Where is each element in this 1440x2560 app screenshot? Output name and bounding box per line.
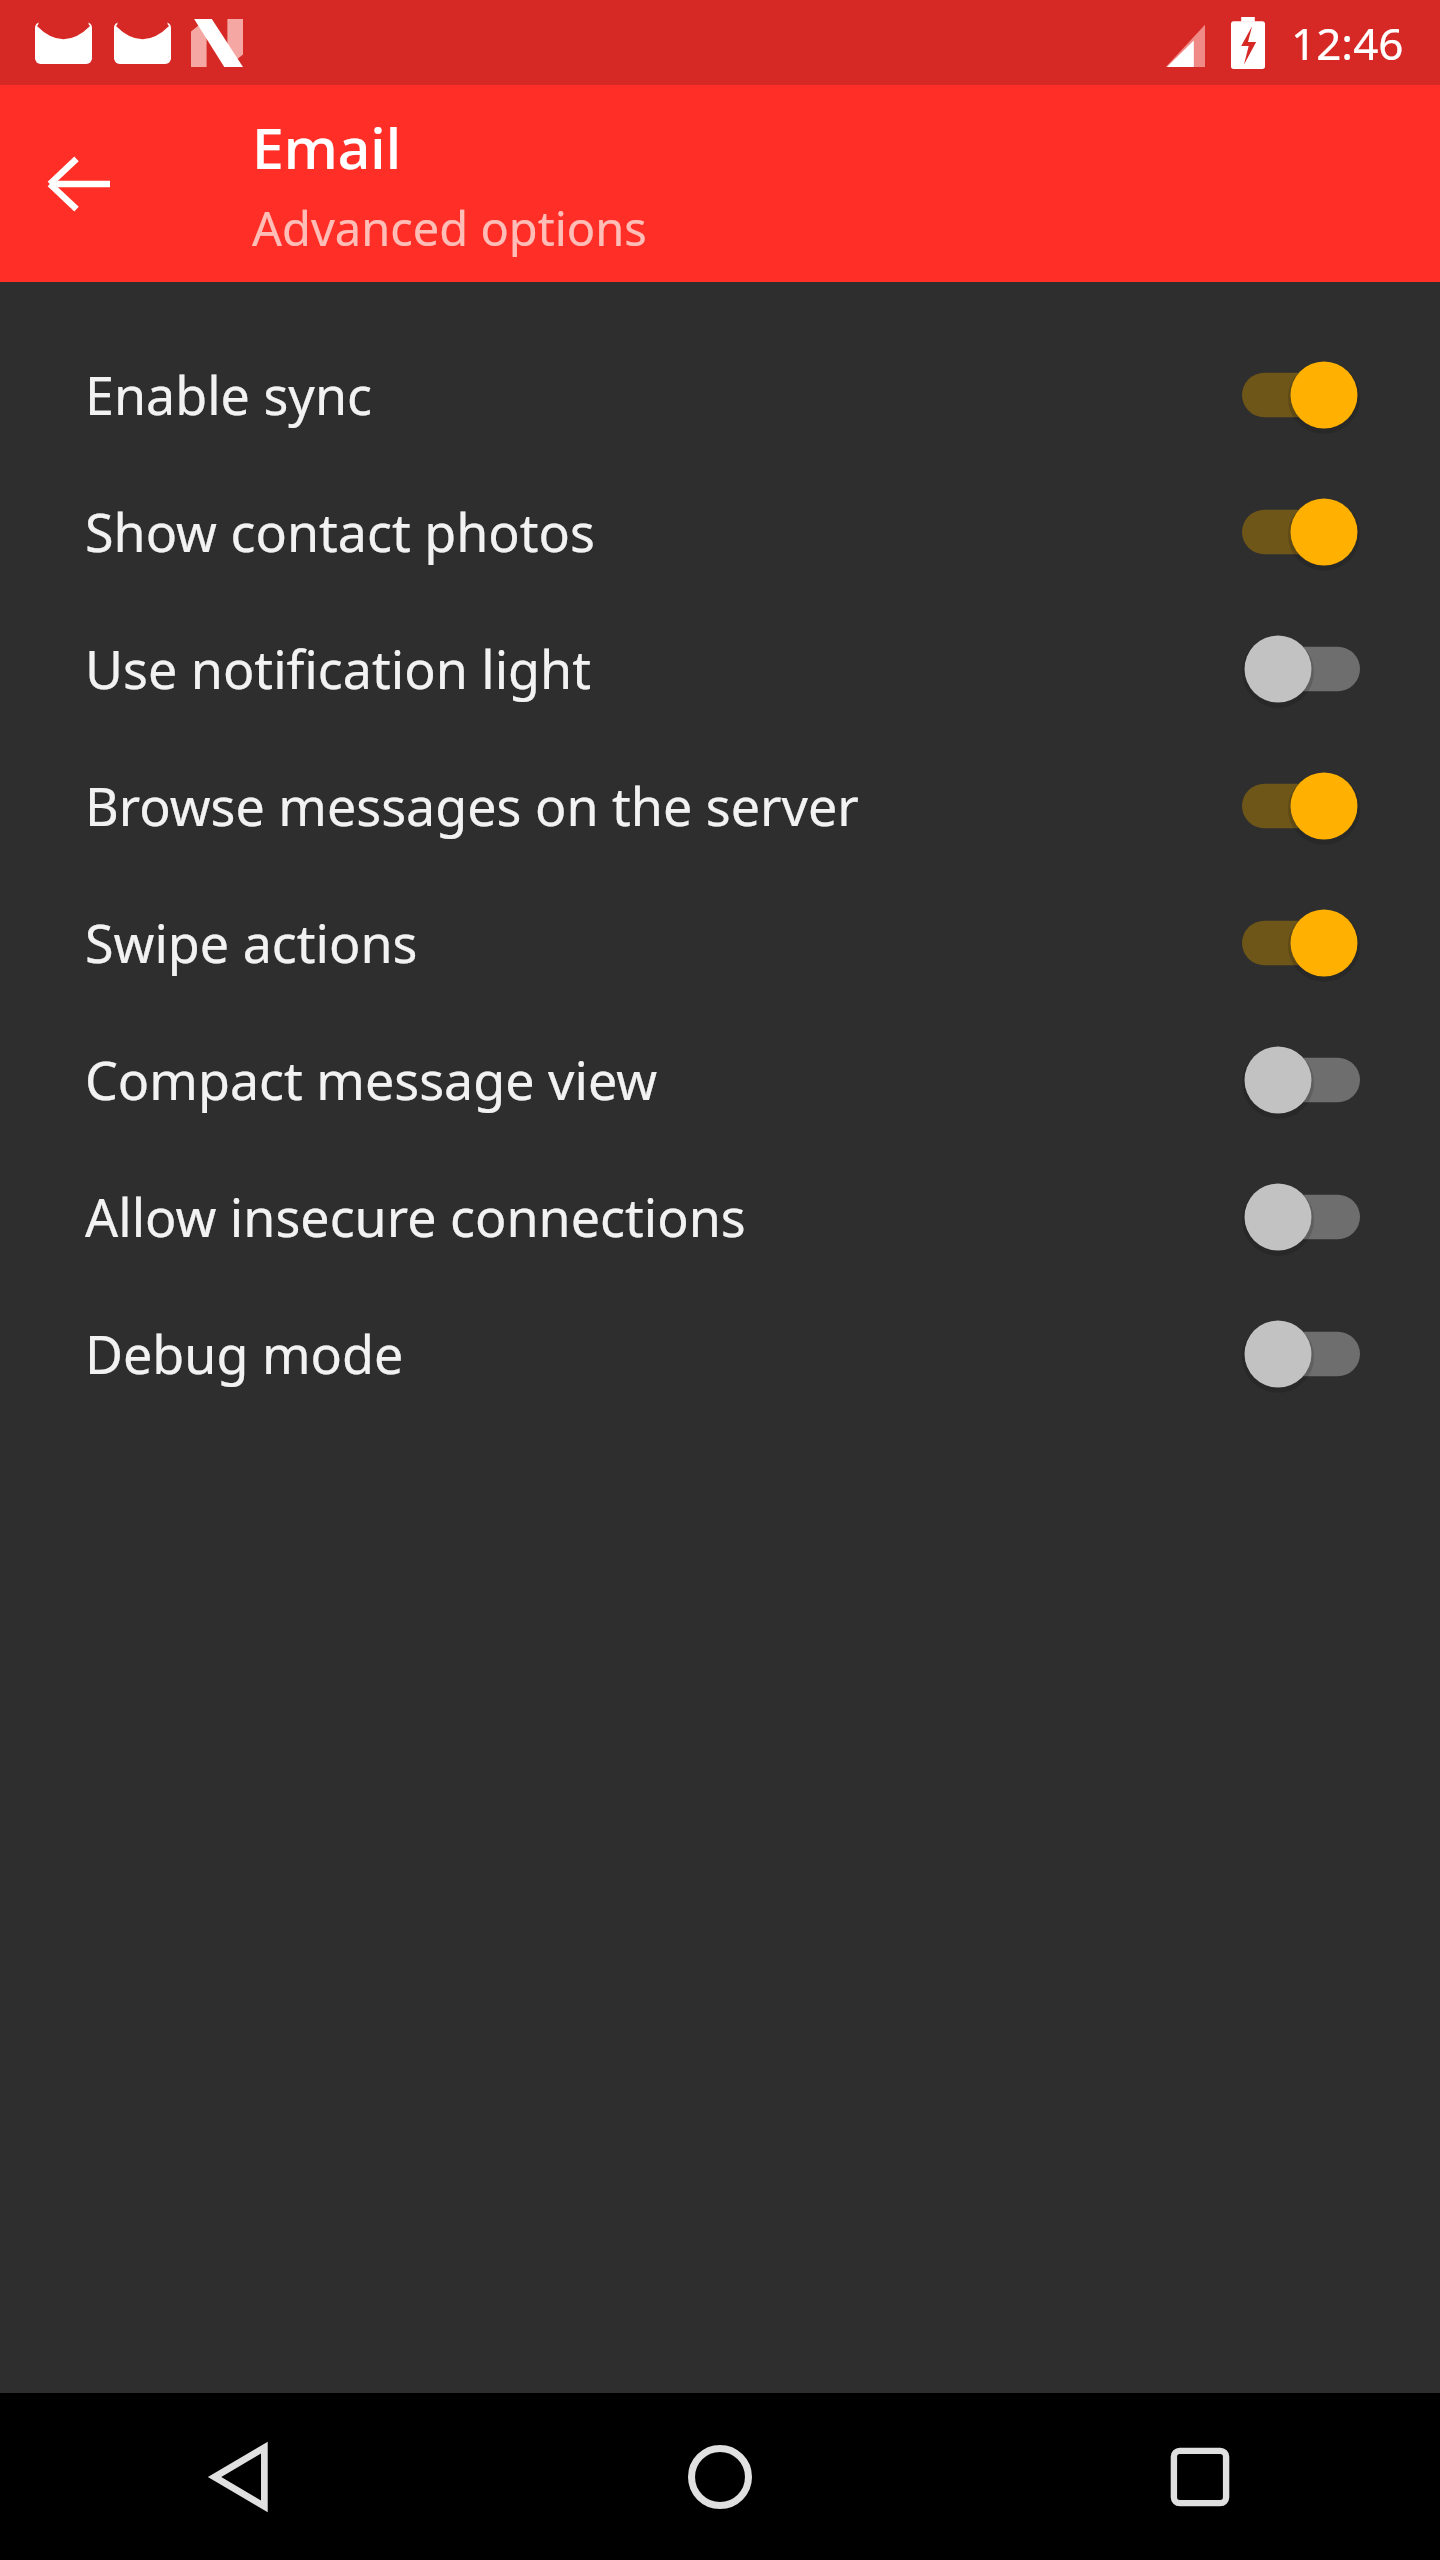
staticText: Advanced options — [252, 196, 647, 260]
staticText: Allow insecure connections — [85, 1181, 746, 1252]
staticText: Debug mode — [85, 1318, 404, 1389]
button[interactable]: Enable sync — [0, 326, 1440, 463]
button[interactable]: Use notification light — [0, 600, 1440, 737]
button[interactable]: Allow insecure connections — [0, 1148, 1440, 1285]
button[interactable]: Show contact photos — [0, 463, 1440, 600]
button[interactable]: Compact message view — [0, 1011, 1440, 1148]
button[interactable]: Recent apps — [960, 2393, 1440, 2560]
button[interactable]: Swipe actions — [0, 874, 1440, 1011]
button[interactable]: Back — [0, 2393, 480, 2560]
staticText: Browse messages on the server — [85, 770, 859, 841]
staticText: Show contact photos — [85, 496, 595, 567]
staticText: Compact message view — [85, 1044, 658, 1115]
staticText: Use notification light — [85, 633, 592, 704]
staticText: Swipe actions — [85, 907, 418, 978]
button[interactable]: Home — [480, 2393, 960, 2560]
button[interactable]: Debug mode — [0, 1285, 1440, 1422]
button[interactable]: Back — [24, 129, 134, 239]
staticText: Email — [252, 108, 402, 186]
button[interactable]: Browse messages on the server — [0, 737, 1440, 874]
staticText: 12:46 — [1291, 13, 1404, 73]
staticText: Enable sync — [85, 359, 372, 430]
